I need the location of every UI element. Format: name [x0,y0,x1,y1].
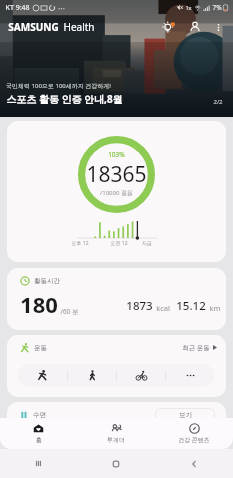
button[interactable]: 103% [7,121,226,262]
button[interactable]: 활동시간 [7,268,226,330]
staticText: /60 분 [60,307,79,316]
button[interactable]: 보기 [155,408,215,422]
staticText: /10000 걸음 [100,189,133,197]
button[interactable]: 건강 콘텐츠 [155,418,233,449]
staticText: 수면 [33,411,46,419]
staticText: kcal [156,303,170,313]
button[interactable]: 홈 [0,418,77,449]
staticText: 투게더 [107,436,125,444]
staticText: 오후 12 [71,240,89,247]
staticText: 18365 [86,160,147,189]
button[interactable]: 투게더 [77,418,155,449]
button[interactable]: Recent apps [0,449,77,478]
staticText: KT 9:48 [5,3,30,13]
button[interactable]: Home [77,449,155,478]
button[interactable]: Cycling [117,364,165,387]
button[interactable]: Running [18,364,67,387]
staticText: SAMSUNG [8,20,59,34]
button[interactable]: 수면 [7,402,226,432]
staticText: 최근 운동 [182,343,210,352]
staticText: Health [63,20,95,34]
button[interactable]: Tips [156,15,180,39]
button[interactable]: More workout types [166,364,214,387]
button[interactable]: More options [208,17,228,37]
staticText: 홈 [36,436,42,444]
button[interactable]: Profile [183,15,207,39]
staticText: 지금 [142,240,152,246]
staticText: 활동시간 [34,277,60,285]
staticText: 국민체력 100으로 100세까지 건강하게! [6,82,111,90]
staticText: 건강 콘텐츠 [178,436,210,444]
staticText: 180 [20,289,58,319]
staticText: 2/2 [213,98,223,106]
button[interactable]: Back [155,449,233,478]
staticText: km [209,303,221,313]
staticText: 15.12 [176,298,206,314]
staticText: 스포츠 활동 인증 안내,8월 [6,92,123,106]
button[interactable]: 운동 [7,335,226,397]
button[interactable]: Walking [68,364,116,387]
staticText: 103% [108,150,125,159]
staticText: 7% [212,3,222,12]
staticText: 1873 [126,298,153,314]
staticText: 1x [185,4,192,11]
staticText: 오전 12 [110,240,128,247]
staticText: 운동 [34,344,47,352]
button[interactable]: 최근 운동 [182,343,217,352]
staticText: 보기 [179,411,192,419]
